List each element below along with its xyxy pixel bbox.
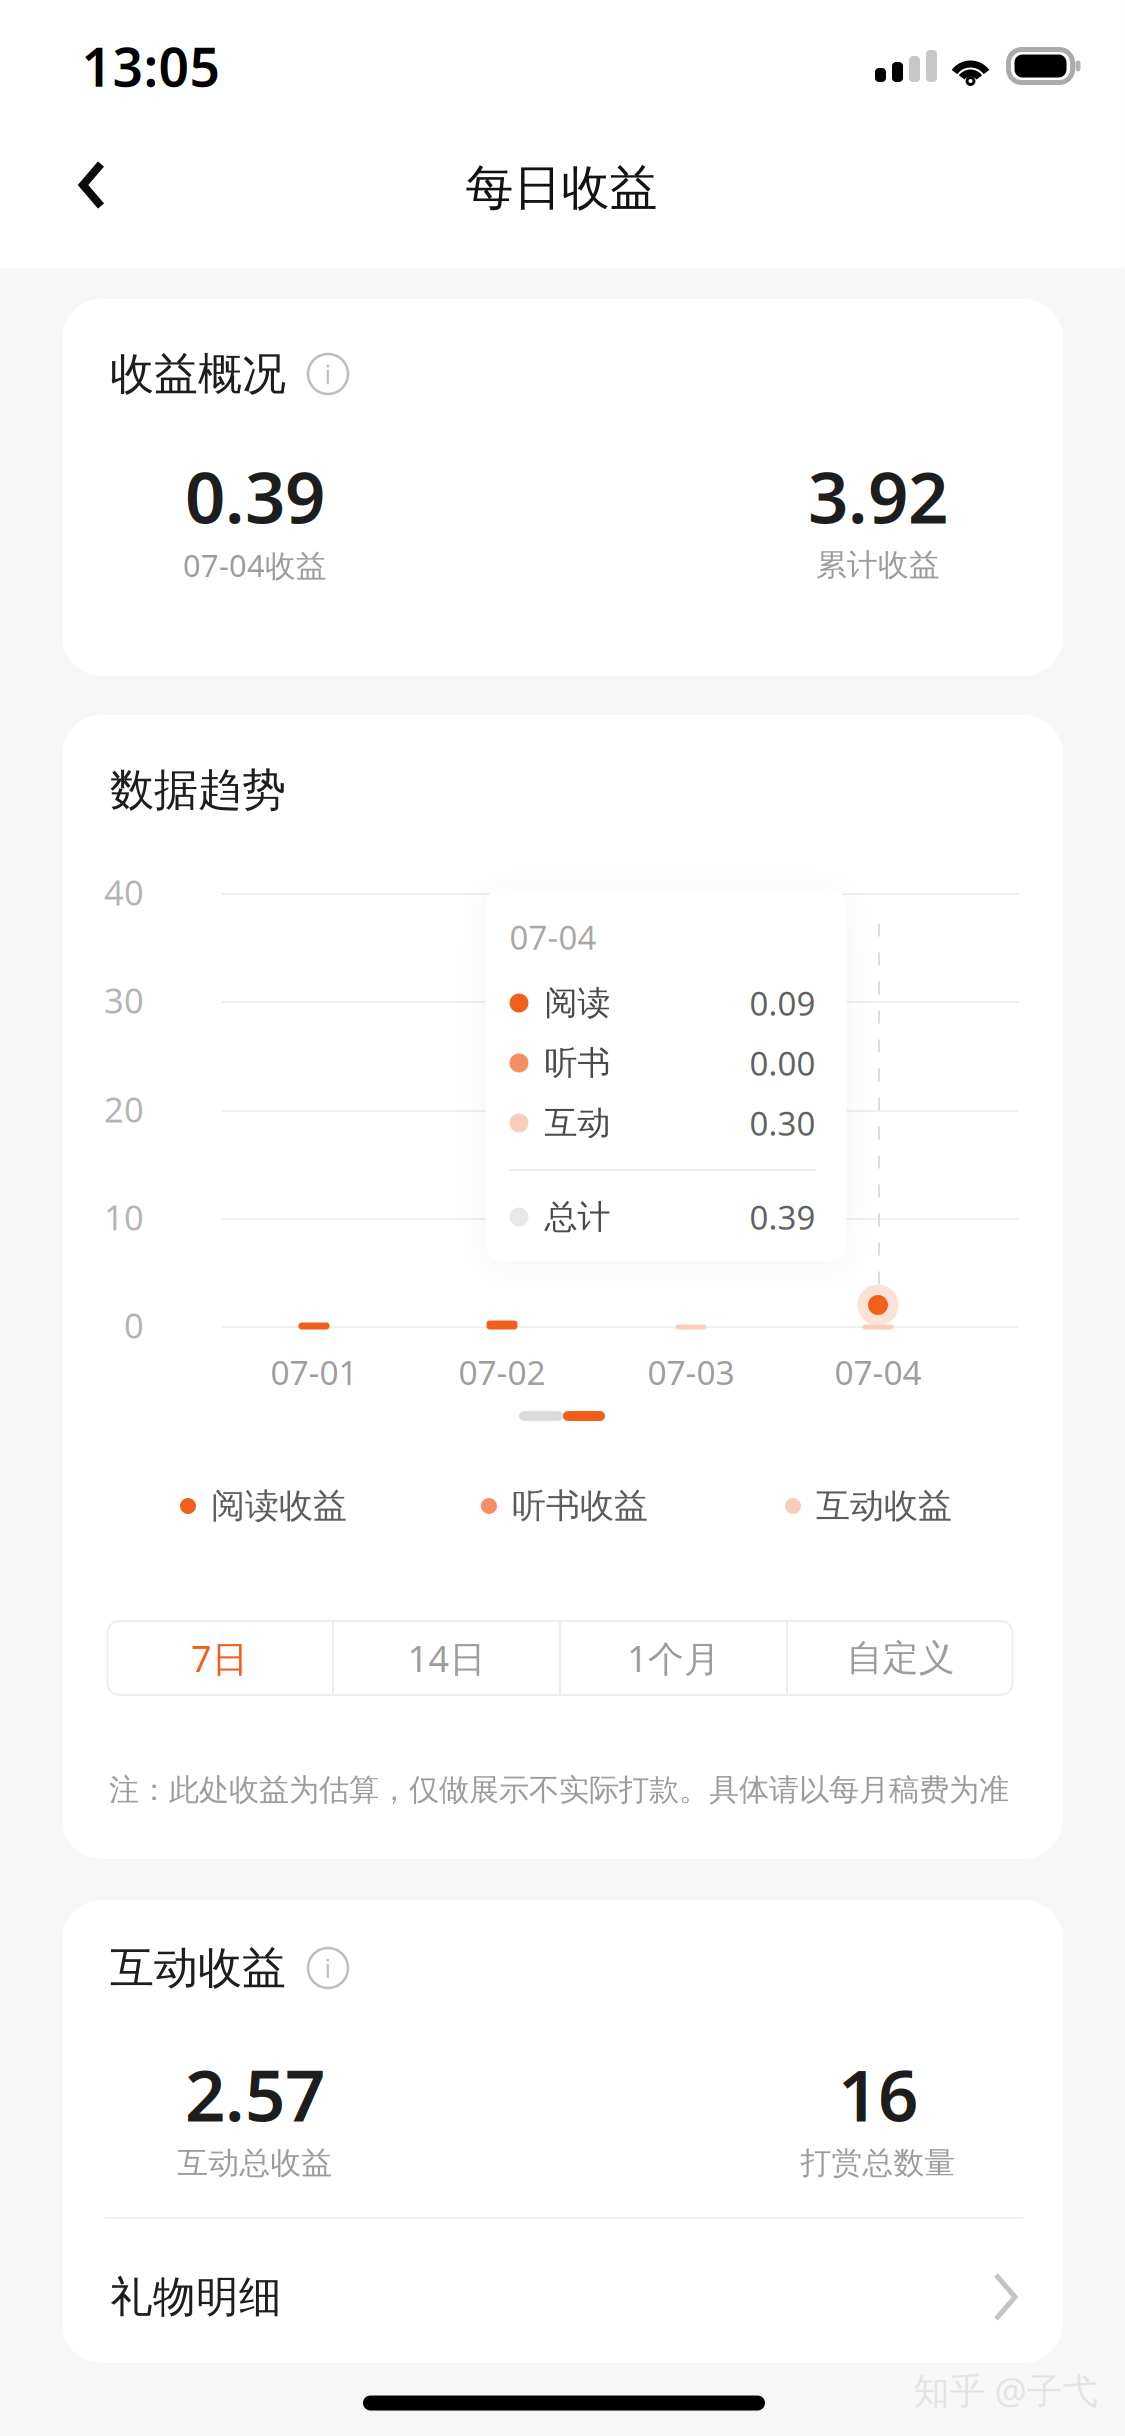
staticText: 互动收益 bbox=[110, 1941, 286, 1995]
staticText: 总计 bbox=[544, 1196, 610, 1238]
staticText: 0.30 bbox=[749, 1100, 815, 1145]
staticText: 互动总收益 bbox=[177, 2144, 332, 2182]
staticText: 收益概况 bbox=[110, 347, 286, 401]
staticText: 注：此处收益为估算，仅做展示不实际打款。具体请以每月稿费为准 bbox=[109, 1771, 1009, 1809]
staticText: 0.39 bbox=[185, 449, 325, 543]
staticText: 阅读 bbox=[544, 982, 610, 1024]
staticText: 互动 bbox=[544, 1102, 610, 1144]
button[interactable]: 7日 bbox=[107, 1621, 332, 1695]
staticText: 07-04收益 bbox=[183, 545, 327, 585]
staticText: 知乎 @子弋 bbox=[913, 2365, 1098, 2414]
staticText: 自定义 bbox=[846, 1636, 954, 1680]
staticText: 听书收益 bbox=[512, 1485, 648, 1527]
staticText: 14日 bbox=[407, 1634, 485, 1682]
button[interactable]: Back bbox=[50, 133, 133, 237]
staticText: 累计收益 bbox=[816, 546, 940, 584]
staticText: 13:05 bbox=[81, 31, 220, 101]
staticText: 数据趋势 bbox=[110, 763, 286, 817]
staticText: 互动收益 bbox=[816, 1485, 952, 1527]
staticText: 3.92 bbox=[808, 449, 948, 543]
staticText: 07-04 bbox=[509, 914, 596, 959]
staticText: 打赏总数量 bbox=[800, 2144, 955, 2182]
button[interactable]: About this metric bbox=[308, 354, 348, 394]
staticText: 30 bbox=[104, 976, 144, 1023]
staticText: 10 bbox=[104, 1193, 144, 1240]
staticText: 2.57 bbox=[185, 2047, 325, 2141]
staticText: 每日收益 bbox=[465, 158, 657, 217]
staticText: 听书 bbox=[544, 1042, 610, 1084]
staticText: 07-04 bbox=[834, 1349, 921, 1395]
staticText: i bbox=[324, 1951, 331, 1985]
button[interactable]: 礼物明细 bbox=[62, 2226, 1063, 2367]
button[interactable]: 14日 bbox=[334, 1621, 559, 1695]
button[interactable]: 自定义 bbox=[788, 1621, 1013, 1695]
staticText: 1个月 bbox=[627, 1634, 720, 1682]
staticText: 0.09 bbox=[749, 980, 815, 1025]
staticText: 0.00 bbox=[749, 1040, 815, 1085]
staticText: 0.39 bbox=[749, 1194, 815, 1239]
staticText: 20 bbox=[104, 1085, 144, 1132]
staticText: i bbox=[324, 357, 331, 391]
staticText: 0 bbox=[124, 1301, 144, 1348]
staticText: 阅读收益 bbox=[211, 1485, 347, 1527]
staticText: 07-01 bbox=[270, 1349, 357, 1395]
staticText: 礼物明细 bbox=[110, 2270, 282, 2324]
button[interactable]: 1个月 bbox=[561, 1621, 786, 1695]
staticText: 07-03 bbox=[647, 1349, 734, 1395]
staticText: 40 bbox=[104, 868, 144, 915]
staticText: 7日 bbox=[191, 1634, 248, 1682]
button[interactable]: About this metric bbox=[308, 1948, 348, 1988]
staticText: 07-02 bbox=[458, 1349, 545, 1395]
staticText: 16 bbox=[838, 2047, 918, 2141]
